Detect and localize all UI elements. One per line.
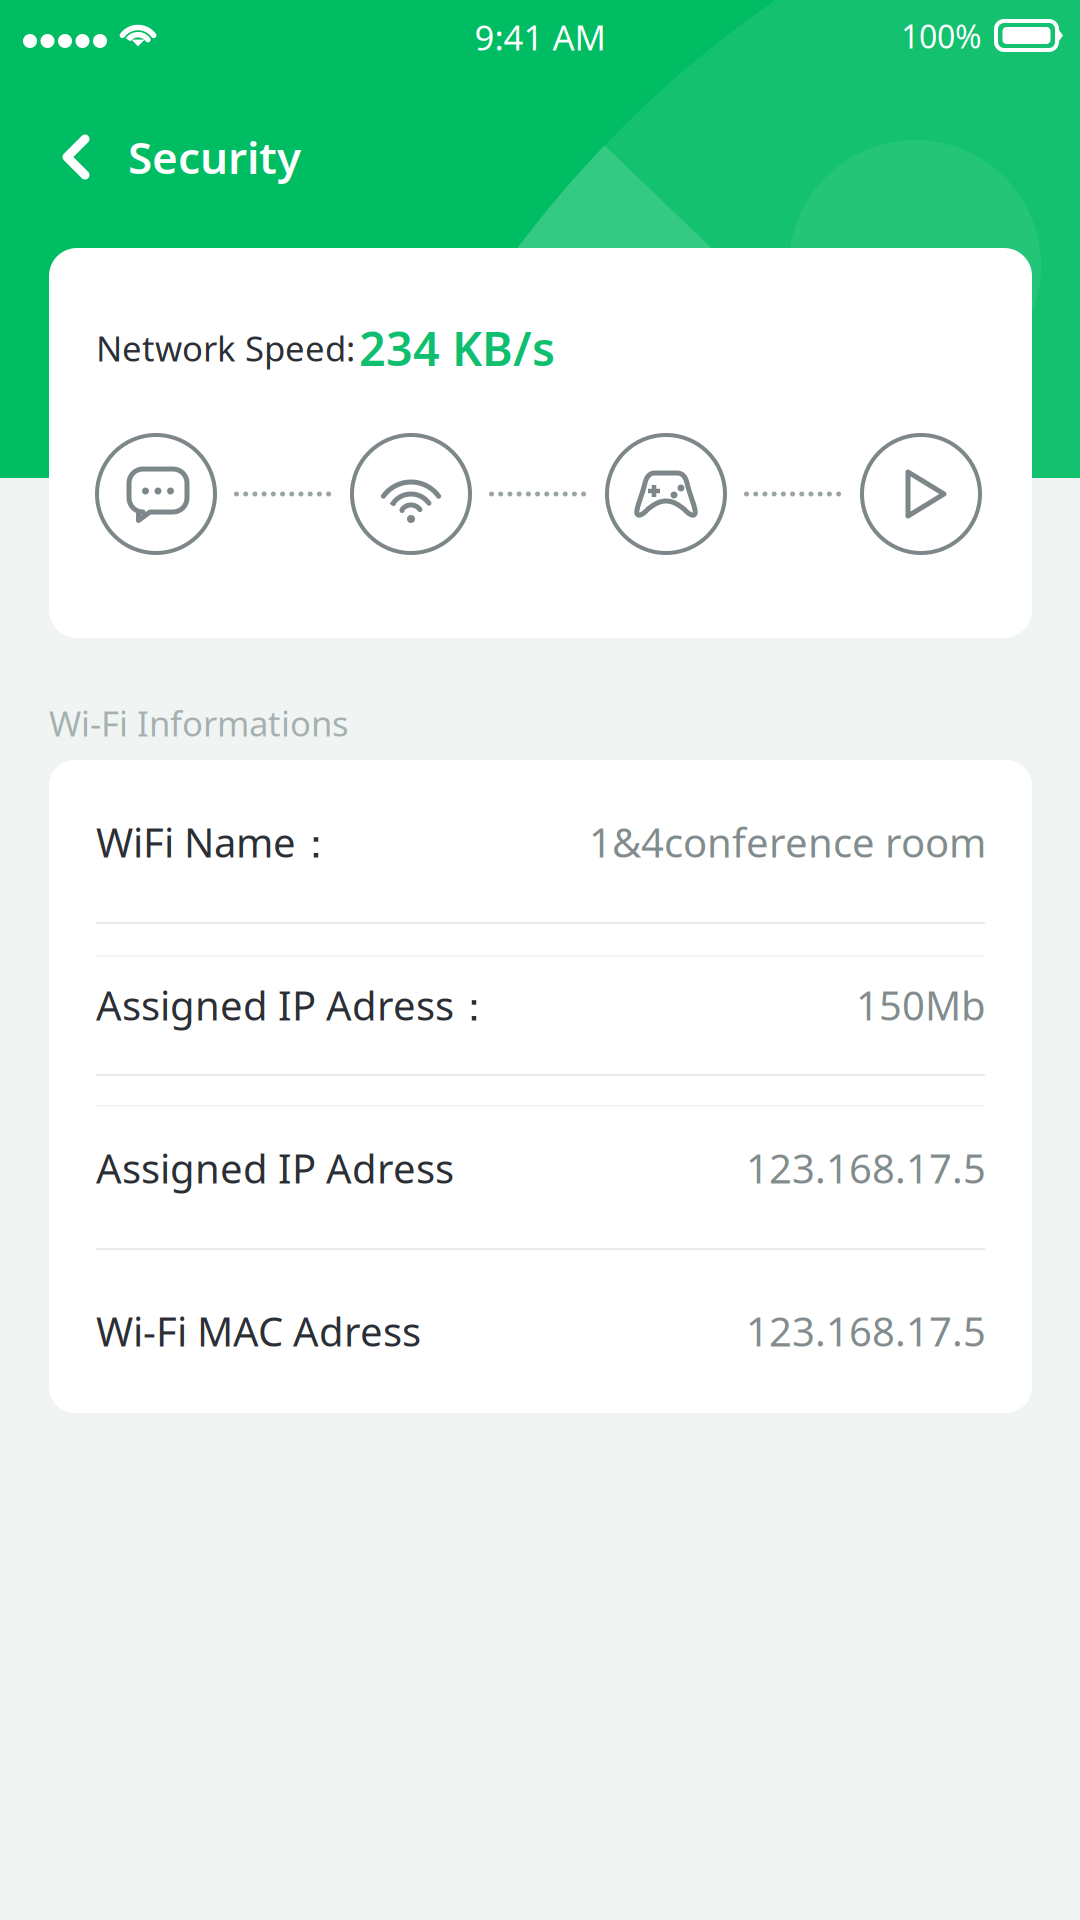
staticText: Security (128, 128, 301, 186)
staticText: Assigned IP Adress： (96, 978, 494, 1032)
staticText: 150Mb (856, 978, 986, 1031)
staticText: Network Speed: (96, 325, 355, 371)
staticText: 9:41 AM (474, 14, 605, 60)
button[interactable]: Assigned IP Adress (49, 1086, 1032, 1249)
staticText: 123.168.17.5 (746, 1141, 986, 1194)
staticText: 123.168.17.5 (746, 1304, 986, 1357)
staticText: 100% (901, 15, 982, 57)
staticText: WiFi Name： (96, 815, 336, 869)
staticText: Wi-Fi MAC Adress (96, 1304, 421, 1357)
staticText: 234 KB/s (359, 317, 555, 379)
staticText: Assigned IP Adress (96, 1141, 454, 1194)
button[interactable]: Back (46, 118, 102, 196)
staticText: 1&4conference room (589, 815, 986, 868)
button[interactable]: Wi-Fi MAC Adress (49, 1249, 1032, 1412)
button[interactable]: WiFi Name： (49, 760, 1032, 923)
staticText: Wi-Fi Informations (49, 700, 349, 746)
button[interactable]: Assigned IP Adress： (49, 923, 1032, 1086)
